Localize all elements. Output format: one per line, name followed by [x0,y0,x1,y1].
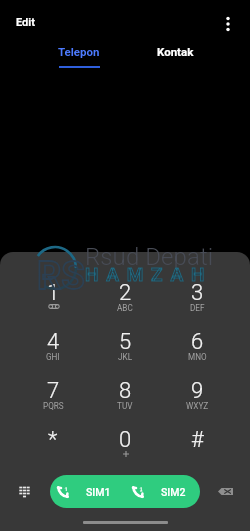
staticText: 2 [119,280,132,306]
staticText: 0 [119,427,132,453]
staticText: HAMZAH [85,263,213,285]
staticText: HAMZAH [85,263,213,285]
button[interactable]: Telepon [56,45,102,68]
button[interactable]: Kontak [154,45,197,68]
button[interactable]: 3 [161,280,233,329]
staticText: 6 [191,329,204,355]
button[interactable]: 0 [89,427,161,476]
staticText: JKL [118,352,133,362]
button[interactable]: 5 [89,329,161,378]
staticText: MNO [188,352,207,362]
staticText: 3 [191,280,204,306]
button[interactable]: 8 [89,378,161,427]
staticText: * [48,427,58,453]
staticText: # [191,427,204,453]
button[interactable]: 1 [17,280,89,329]
staticText: 8 [119,378,132,404]
button[interactable]: 2 [89,280,161,329]
staticText: 9 [191,378,204,404]
button[interactable]: More options [217,13,239,35]
button[interactable]: # [161,427,233,476]
button[interactable]: Backspace [212,478,239,505]
staticText: Kontak [157,45,194,58]
staticText: ABC [117,303,133,313]
staticText: 7 [47,378,60,404]
button[interactable]: Show dialpad [11,478,38,505]
staticText: 4 [47,329,60,355]
staticText: SIM2 [161,486,186,498]
button[interactable]: 9 [161,378,233,427]
button[interactable]: 6 [161,329,233,378]
button[interactable]: 4 [17,329,89,378]
staticText: WXYZ [186,401,209,411]
staticText: GHI [46,352,60,362]
staticText: Telepon [58,45,100,58]
staticText: PQRS [43,401,64,411]
button[interactable]: Edit [12,12,39,33]
button[interactable]: SIM1 [50,475,121,508]
button[interactable]: 7 [17,378,89,427]
staticText: RS [37,254,85,299]
button[interactable]: * [17,427,89,476]
staticText: 5 [119,329,132,355]
staticText: SIM1 [86,486,111,498]
staticText: Rsud Depati [85,243,214,271]
staticText: Edit [16,16,35,29]
button[interactable]: SIM2 [121,475,196,508]
staticText: TUV [117,401,133,411]
staticText: DEF [190,303,205,313]
staticText: 1 [47,280,60,306]
